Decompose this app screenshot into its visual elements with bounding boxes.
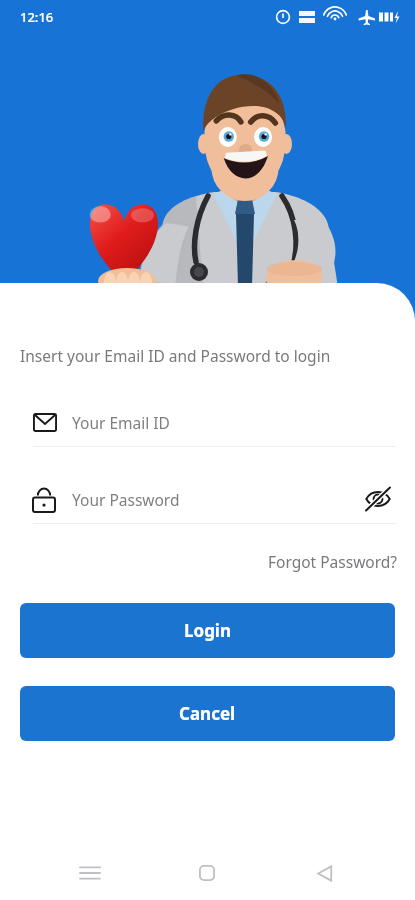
button[interactable]: Show password (360, 481, 396, 517)
button[interactable]: Recents (64, 847, 116, 899)
button[interactable]: Cancel (20, 686, 395, 741)
staticText: Insert your Email ID and Password to log… (20, 345, 331, 366)
staticText: Login (184, 619, 232, 642)
staticText: Your Email ID (72, 412, 170, 433)
button[interactable]: Your Password (0, 475, 415, 523)
staticText: Your Password (72, 489, 360, 510)
staticText: Forgot Password? (268, 551, 398, 572)
button[interactable]: Back (298, 847, 350, 899)
button[interactable]: Forgot Password? (251, 547, 415, 576)
staticText: 12:16 (20, 8, 54, 26)
staticText: Cancel (179, 702, 236, 725)
button[interactable]: Login (20, 603, 395, 658)
button[interactable]: Your Email ID (0, 398, 415, 446)
button[interactable]: Home (181, 847, 233, 899)
